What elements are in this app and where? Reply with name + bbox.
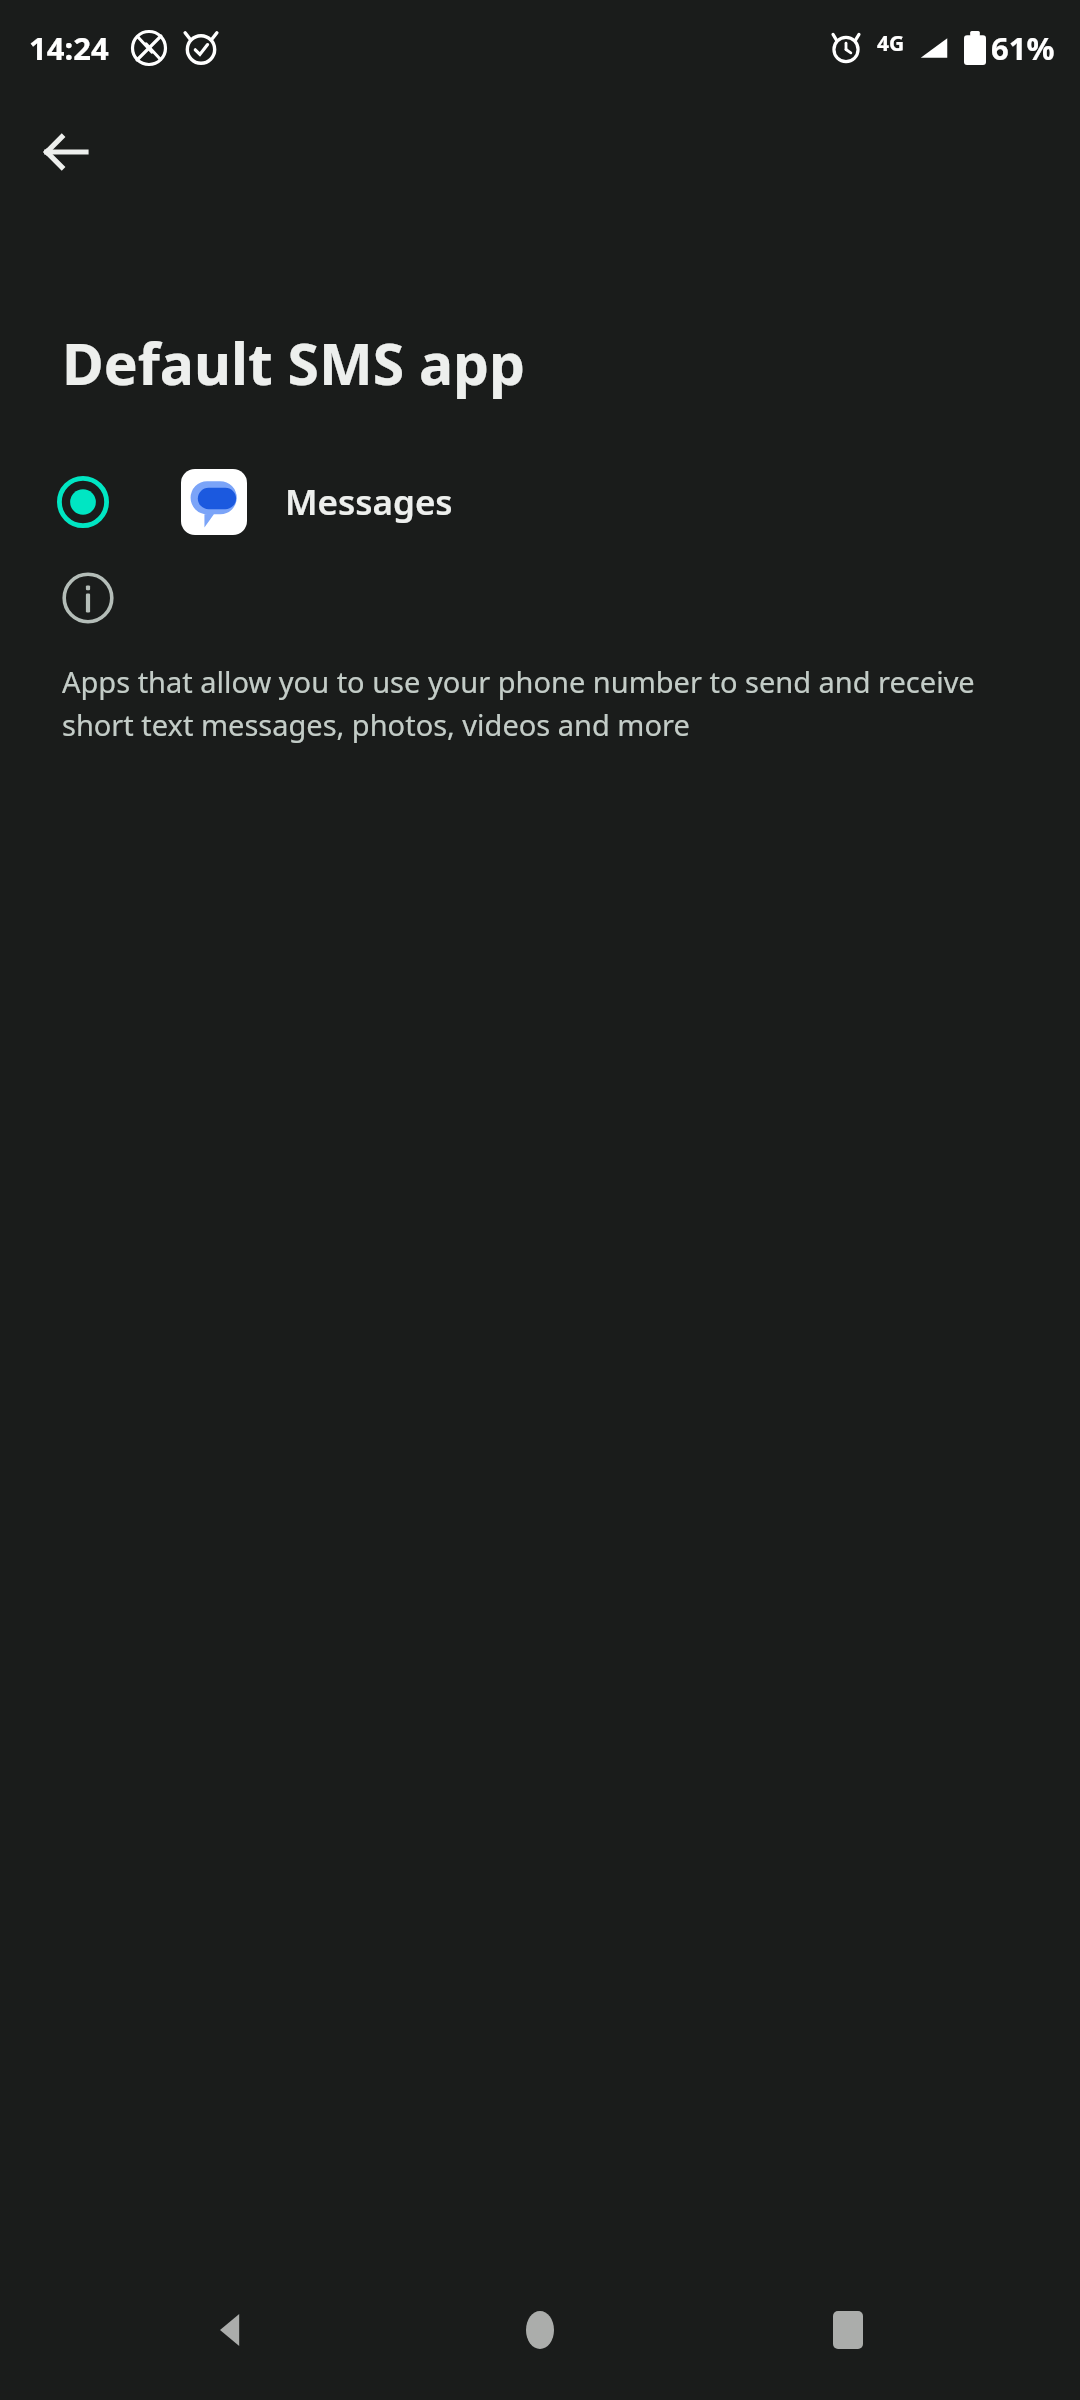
button[interactable]: Navigate up (18, 104, 114, 200)
button[interactable]: Back (168, 2270, 288, 2390)
staticText: Default SMS app (62, 324, 526, 402)
staticText: 61% (991, 27, 1055, 69)
button[interactable]: Recent apps (788, 2270, 908, 2390)
staticText: Messages (285, 478, 453, 526)
staticText: 4G (877, 29, 905, 58)
button[interactable]: Messages (0, 450, 1080, 554)
staticText: Apps that allow you to use your phone nu… (62, 662, 1024, 744)
staticText: 14:24 (29, 27, 109, 69)
button[interactable]: Home (480, 2270, 600, 2390)
